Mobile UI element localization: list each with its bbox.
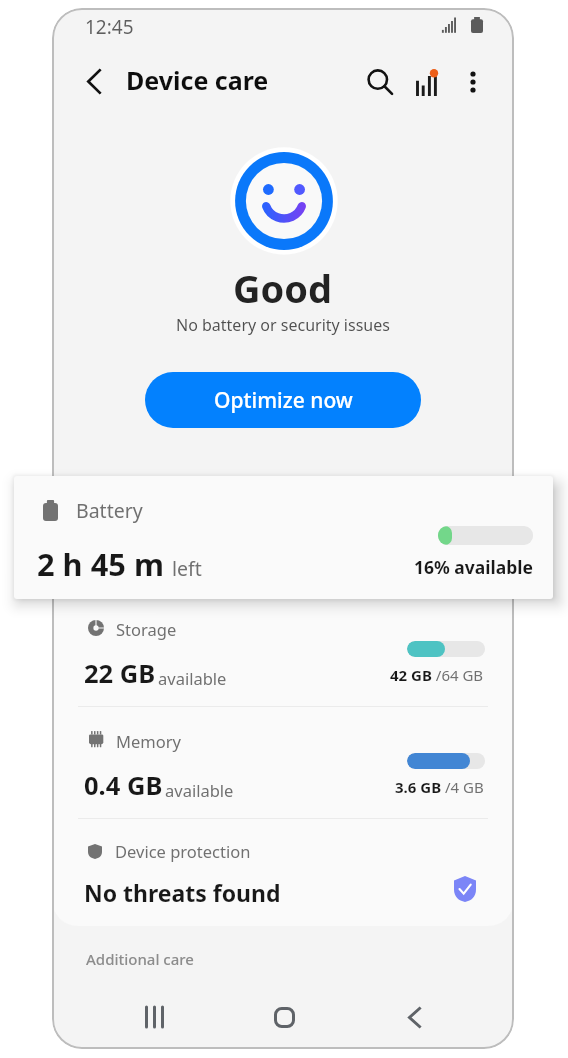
staticText: Good <box>233 262 333 314</box>
staticText: Additional care <box>86 949 194 969</box>
button[interactable]: Recent apps <box>129 992 179 1042</box>
staticText: Optimize now <box>214 386 353 415</box>
staticText: available <box>165 779 234 801</box>
staticText: 3.6 GB /4 GB <box>395 777 484 797</box>
staticText: Device protection <box>115 840 251 862</box>
staticText: available <box>158 667 227 689</box>
staticText: No battery or security issues <box>176 314 390 336</box>
staticText: 22 GB <box>84 656 156 691</box>
button[interactable]: Home <box>259 992 309 1042</box>
button[interactable]: Storage <box>52 598 514 710</box>
button[interactable]: Usage statistics <box>404 57 452 105</box>
staticText: 42 GB /64 GB <box>390 665 484 685</box>
staticText: Storage <box>116 618 177 640</box>
staticText: left <box>172 555 202 582</box>
staticText: Memory <box>116 730 181 752</box>
staticText: 0.4 GB <box>84 768 163 803</box>
staticText: Device care <box>126 63 269 97</box>
button[interactable]: Back <box>389 992 439 1042</box>
staticText: 12:45 <box>85 14 134 40</box>
button[interactable]: Search <box>356 59 401 104</box>
staticText: 16% available <box>414 555 533 579</box>
staticText: Battery <box>76 497 143 524</box>
button[interactable]: Navigate up <box>71 59 116 104</box>
button[interactable]: Memory <box>52 710 514 822</box>
button[interactable]: Battery <box>14 476 553 599</box>
staticText: No threats found <box>84 877 281 908</box>
staticText: 2 h 45 m <box>37 543 164 585</box>
button[interactable]: More options <box>450 59 495 104</box>
button[interactable]: Optimize now <box>145 372 421 428</box>
button[interactable]: Device protection <box>52 822 514 926</box>
